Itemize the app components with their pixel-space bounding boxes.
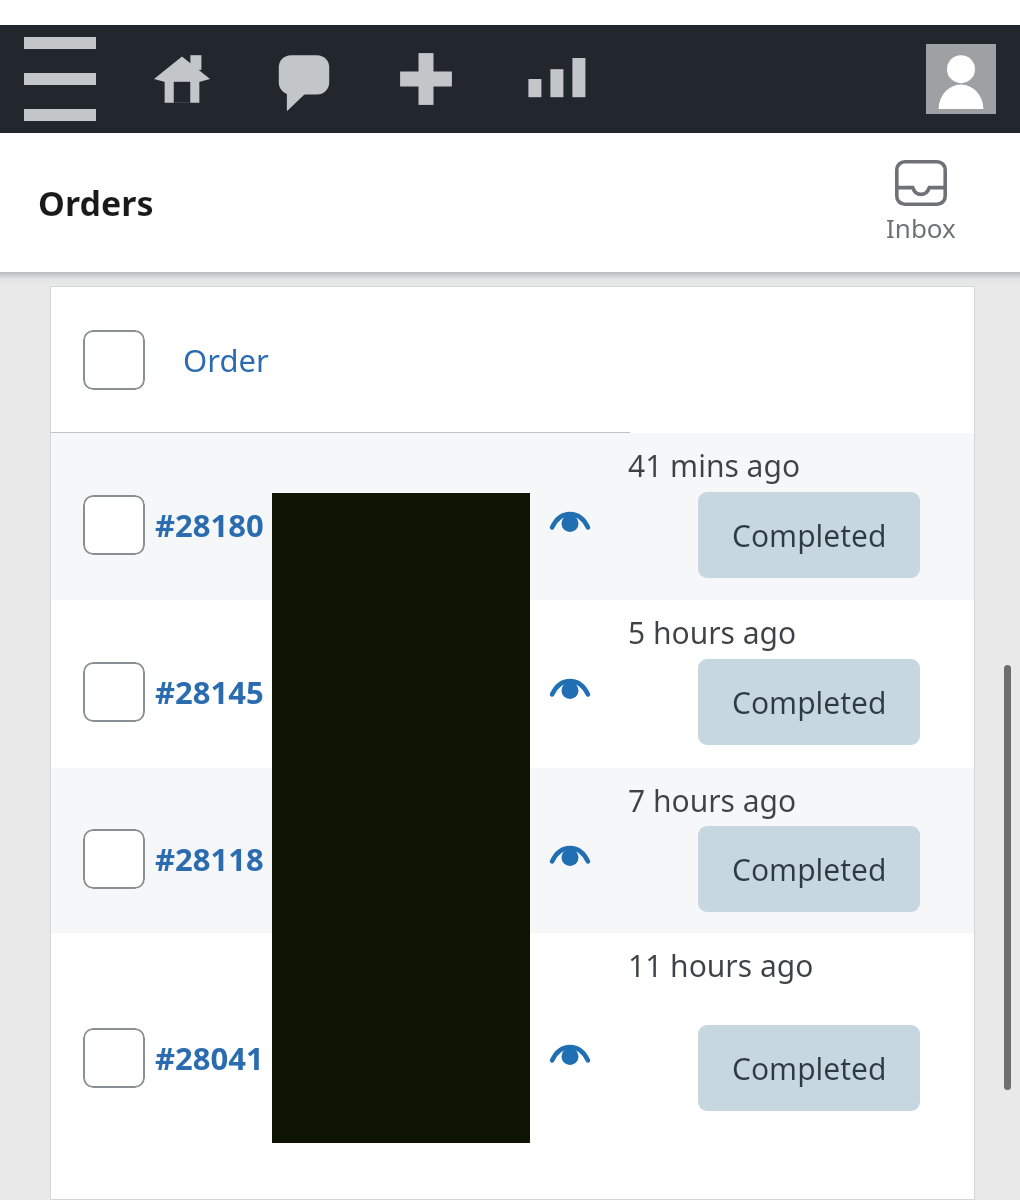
- staticText: Completed: [732, 1048, 887, 1089]
- button[interactable]: 7 hours ago: [50, 768, 975, 933]
- staticText: Completed: [732, 849, 887, 890]
- button[interactable]: Create: [388, 41, 464, 117]
- button[interactable]: Select: [83, 330, 145, 390]
- staticText: 11 hours ago: [628, 945, 814, 986]
- button[interactable]: View order: [550, 512, 590, 538]
- staticText: #28118: [155, 838, 264, 880]
- button[interactable]: Select: [83, 829, 145, 889]
- button[interactable]: Home: [144, 41, 220, 117]
- button[interactable]: Profile: [926, 44, 996, 114]
- button[interactable]: View order: [550, 846, 590, 872]
- staticText: Completed: [732, 515, 887, 556]
- button[interactable]: Select: [83, 1028, 145, 1088]
- staticText: Orders: [38, 180, 154, 226]
- staticText: #28180: [155, 504, 264, 546]
- staticText: Inbox: [886, 210, 956, 245]
- button[interactable]: Completed: [698, 659, 920, 745]
- button[interactable]: Completed: [698, 1025, 920, 1111]
- staticText: Order: [183, 339, 269, 381]
- button[interactable]: Inbox: [876, 154, 966, 251]
- staticText: 5 hours ago: [628, 612, 797, 653]
- button[interactable]: Completed: [698, 826, 920, 912]
- button[interactable]: Select: [83, 662, 145, 722]
- button[interactable]: View order: [550, 1045, 590, 1071]
- button[interactable]: Menu: [22, 41, 98, 117]
- button[interactable]: Completed: [698, 492, 920, 578]
- button[interactable]: 41 mins ago: [50, 433, 975, 600]
- button[interactable]: Insights: [510, 41, 586, 117]
- button[interactable]: View order: [550, 679, 590, 705]
- staticText: #28145: [155, 671, 264, 713]
- button[interactable]: Select: [83, 495, 145, 555]
- staticText: Completed: [732, 682, 887, 723]
- staticText: #28041: [155, 1037, 264, 1079]
- button[interactable]: Messages: [266, 41, 342, 117]
- button[interactable]: 5 hours ago: [50, 600, 975, 768]
- button[interactable]: 11 hours ago: [50, 933, 975, 1166]
- button[interactable]: Select: [50, 286, 975, 433]
- staticText: 7 hours ago: [628, 780, 797, 821]
- staticText: 41 mins ago: [628, 445, 801, 486]
